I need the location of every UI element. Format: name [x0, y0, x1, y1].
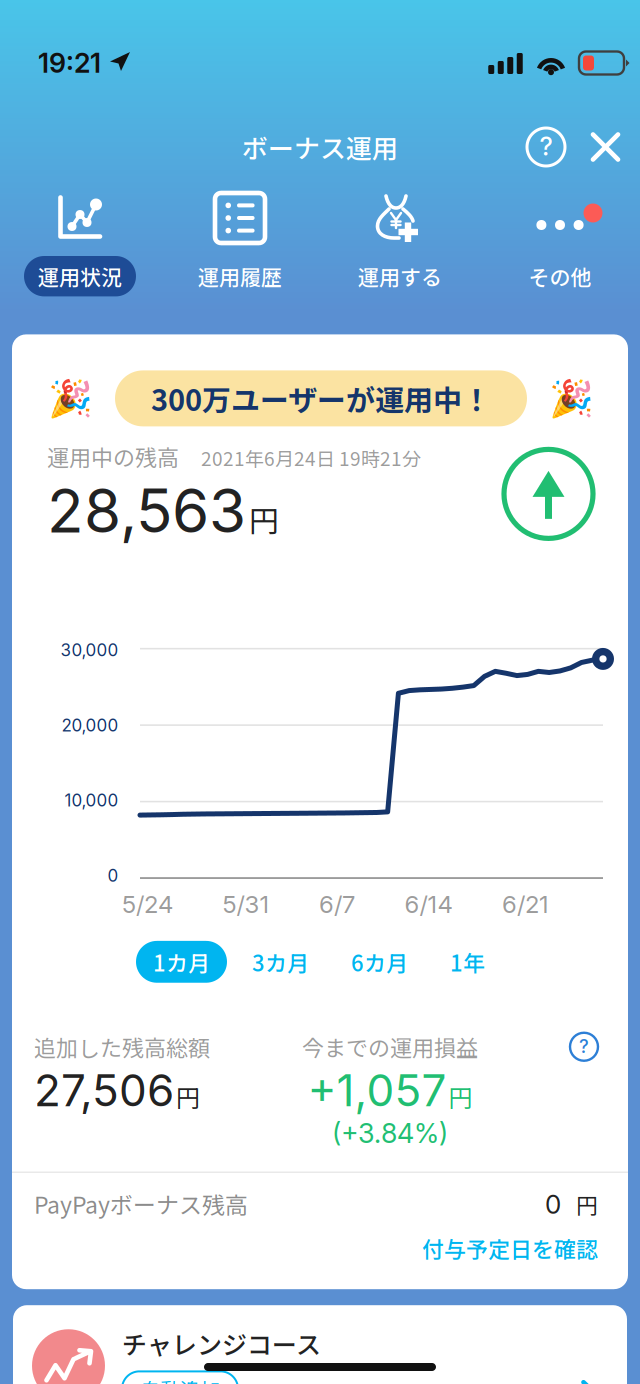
- staticText: 運用する: [358, 261, 442, 291]
- staticText: 追加した残高総額: [34, 1031, 210, 1063]
- staticText: ?: [579, 1035, 589, 1057]
- staticText: 2021年6月24日 19時21分: [201, 444, 421, 471]
- staticText: 1カ月: [153, 946, 210, 978]
- staticText: チャレンジコース: [122, 1325, 321, 1361]
- staticText: 円: [576, 1188, 598, 1220]
- staticText: 運用状況: [38, 261, 122, 291]
- staticText: PayPayボーナス残高: [34, 1187, 248, 1220]
- staticText: 27,506: [34, 1064, 174, 1117]
- staticText: 5/31: [222, 890, 269, 919]
- staticText: ?: [539, 131, 552, 162]
- button[interactable]: 閉じる: [565, 131, 621, 162]
- staticText: 10,000: [64, 790, 118, 811]
- button[interactable]: 損益について: [570, 1031, 598, 1061]
- staticText: ボーナス運用: [242, 128, 398, 166]
- staticText: 0: [545, 1188, 561, 1220]
- button[interactable]: 運用する: [320, 190, 480, 296]
- staticText: 300万ユーザーが運用中！: [151, 377, 491, 419]
- staticText: 6/14: [404, 890, 452, 919]
- button[interactable]: ヘルプ: [527, 128, 565, 166]
- staticText: 6/21: [502, 890, 549, 919]
- button[interactable]: 付与予定日を確認: [422, 1232, 598, 1264]
- staticText: +1,057: [307, 1064, 446, 1117]
- staticText: 28,563: [47, 474, 246, 547]
- button[interactable]: 3カ月: [235, 941, 326, 983]
- staticText: 6/7: [319, 890, 355, 919]
- staticText: 円: [249, 497, 279, 541]
- staticText: 自動追加: [140, 1374, 220, 1384]
- staticText: 付与予定日を確認: [422, 1232, 598, 1264]
- staticText: 5/24: [122, 890, 173, 919]
- staticText: 運用中の残高: [47, 440, 179, 472]
- staticText: 20,000: [61, 715, 118, 736]
- staticText: 運用履歴: [198, 261, 282, 291]
- staticText: 今までの運用損益: [302, 1031, 478, 1063]
- button[interactable]: 運用状況: [0, 190, 160, 296]
- staticText: その他: [528, 261, 591, 291]
- staticText: 円: [448, 1079, 472, 1114]
- staticText: 円: [176, 1079, 200, 1114]
- staticText: 🎉: [549, 377, 594, 419]
- button[interactable]: 6カ月: [334, 941, 425, 983]
- staticText: 19:21: [38, 47, 101, 79]
- button[interactable]: 1カ月: [136, 941, 227, 983]
- staticText: 6カ月: [351, 946, 408, 978]
- staticText: 3カ月: [252, 946, 309, 978]
- button[interactable]: チャレンジコース: [13, 1305, 627, 1384]
- button[interactable]: その他: [480, 190, 640, 296]
- staticText: 🎉: [48, 377, 93, 419]
- button[interactable]: 1年: [433, 941, 502, 983]
- staticText: 0: [107, 865, 118, 886]
- staticText: 1年: [450, 946, 485, 978]
- staticText: (+3.84%): [332, 1117, 448, 1149]
- button[interactable]: 運用履歴: [160, 190, 320, 296]
- staticText: 30,000: [60, 640, 118, 660]
